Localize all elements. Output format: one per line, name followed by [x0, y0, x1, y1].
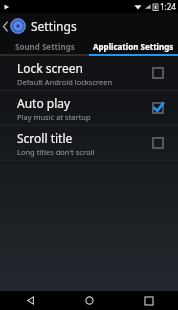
- button[interactable]: Recent apps: [119, 291, 178, 310]
- staticText: Settings: [31, 18, 77, 34]
- button[interactable]: Auto play: [0, 91, 178, 126]
- button[interactable]: Navigate up: [0, 17, 10, 35]
- staticText: Sound Settings: [15, 41, 75, 52]
- button[interactable]: Home: [60, 291, 119, 310]
- button[interactable]: Back: [0, 291, 60, 310]
- staticText: Auto play: [17, 95, 71, 111]
- staticText: Play music at startup: [17, 112, 91, 122]
- button[interactable]: Sound Settings: [0, 38, 89, 54]
- staticText: Long titles don't scroll: [17, 147, 95, 157]
- button[interactable]: Lock screen: [0, 56, 178, 91]
- button[interactable]: Application Settings: [89, 38, 178, 54]
- button[interactable]: Scroll title: [0, 126, 178, 161]
- staticText: Application Settings: [93, 41, 174, 52]
- staticText: Scroll title: [17, 130, 73, 146]
- staticText: 1:24: [160, 1, 176, 12]
- staticText: Lock screen: [17, 60, 84, 76]
- staticText: Default Android lockscreen: [17, 77, 113, 87]
